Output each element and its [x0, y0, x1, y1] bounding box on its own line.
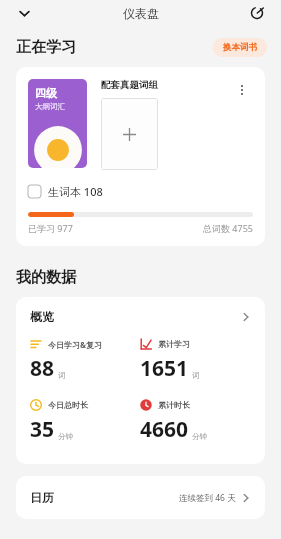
staticText: 概览	[30, 309, 54, 324]
button[interactable]: 概览	[30, 309, 251, 324]
staticText: 我的数据	[16, 268, 76, 287]
staticText: 分钟	[192, 432, 207, 441]
staticText: 配套真题词组	[101, 79, 158, 91]
staticText: 生词本 108	[48, 184, 103, 199]
staticText: 已学习 977	[28, 222, 73, 234]
button[interactable]: 四级	[28, 79, 87, 168]
button[interactable]: Collapse	[10, 0, 38, 26]
button[interactable]: 四级	[16, 67, 265, 246]
staticText: 词	[192, 371, 200, 380]
button[interactable]: More options	[231, 79, 253, 101]
button[interactable]: Add word list	[102, 99, 157, 169]
staticText: 大纲词汇	[35, 102, 65, 111]
staticText: 日历	[30, 490, 54, 505]
button[interactable]: Sync	[243, 0, 271, 26]
staticText: 四级	[35, 86, 57, 100]
staticText: 正在学习	[16, 38, 76, 57]
staticText: 今日总时长	[48, 400, 88, 410]
staticText: 1651	[140, 354, 189, 383]
staticText: 88	[30, 354, 55, 383]
staticText: 连续签到 46 天	[179, 492, 236, 504]
staticText: 总词数 4755	[203, 222, 253, 234]
staticText: 分钟	[58, 432, 73, 441]
staticText: 今日学习&复习	[48, 339, 102, 350]
staticText: 累计学习	[158, 339, 190, 349]
staticText: 词	[58, 371, 66, 380]
staticText: 换本词书	[223, 42, 257, 53]
staticText: 累计时长	[158, 400, 190, 410]
button[interactable]: 日历	[16, 476, 265, 519]
staticText: 4660	[140, 415, 189, 444]
staticText: 仪表盘	[123, 6, 159, 21]
staticText: 35	[30, 415, 55, 444]
button[interactable]: 生词本 108	[28, 184, 253, 199]
button[interactable]: 换本词书	[213, 38, 267, 57]
